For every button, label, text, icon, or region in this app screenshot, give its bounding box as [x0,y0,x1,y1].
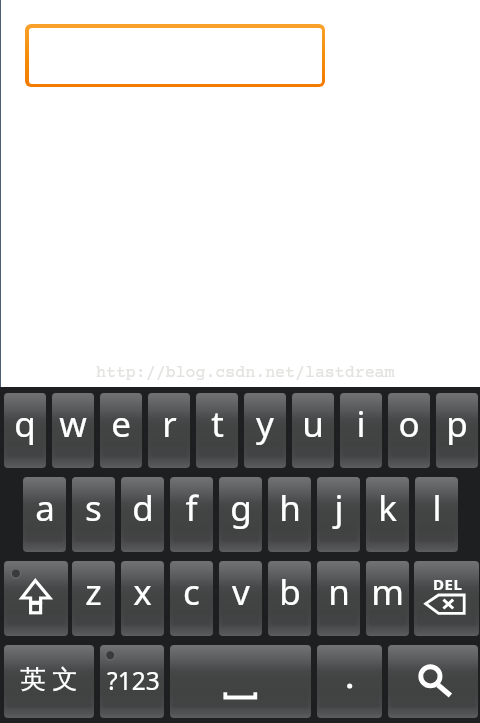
staticText: ?123 [107,664,160,697]
staticText: a [35,484,55,532]
button[interactable]: k [366,477,409,552]
staticText: e [111,400,131,448]
button[interactable]: d [121,477,164,552]
staticText: b [279,568,301,616]
staticText: k [378,484,397,532]
staticText: v [232,568,250,616]
button[interactable]: q [4,393,46,468]
button[interactable]: Period [317,645,382,718]
button[interactable]: r [148,393,190,468]
staticText: h [279,484,301,532]
button[interactable] [25,24,325,87]
button[interactable]: m [366,561,409,636]
staticText: g [230,484,252,532]
staticText: r [162,400,177,448]
button[interactable]: i [340,393,382,468]
staticText: j [334,484,344,532]
staticText: n [328,568,350,616]
staticText: m [371,568,404,616]
staticText: u [302,400,324,448]
button[interactable]: o [388,393,430,468]
button[interactable]: n [317,561,360,636]
staticText: x [133,568,152,616]
button[interactable]: Space [170,645,311,718]
button[interactable]: c [170,561,213,636]
button[interactable]: u [292,393,334,468]
button[interactable]: w [52,393,94,468]
staticText: z [85,568,102,616]
staticText: f [185,484,198,532]
staticText: w [59,400,87,448]
button[interactable]: Shift [4,561,68,636]
staticText: q [14,400,36,448]
staticText: http://blog.csdn.net/lastdream [96,364,395,383]
button[interactable]: Search [388,645,478,718]
button[interactable]: l [415,477,458,552]
button[interactable]: 英 文 [4,645,94,718]
button[interactable]: s [72,477,115,552]
button[interactable]: h [268,477,311,552]
staticText: o [398,400,420,448]
staticText: i [356,400,366,448]
button[interactable]: b [268,561,311,636]
button[interactable]: t [196,393,238,468]
button[interactable]: a [23,477,66,552]
button[interactable]: x [121,561,164,636]
button[interactable]: j [317,477,360,552]
button[interactable]: g [219,477,262,552]
button[interactable]: e [100,393,142,468]
staticText: s [85,484,102,532]
button[interactable]: v [219,561,262,636]
staticText: t [211,400,224,448]
staticText: p [446,400,468,448]
button[interactable]: z [72,561,115,636]
staticText: DEL [433,574,463,594]
staticText: y [256,400,274,448]
button[interactable]: Symbols [100,645,164,718]
button[interactable]: f [170,477,213,552]
button[interactable]: p [436,393,478,468]
staticText: d [132,484,154,532]
button[interactable]: Delete [414,561,479,636]
staticText: l [432,484,442,532]
staticText: 英 文 [20,661,78,696]
button[interactable]: y [244,393,286,468]
staticText: c [183,568,200,616]
